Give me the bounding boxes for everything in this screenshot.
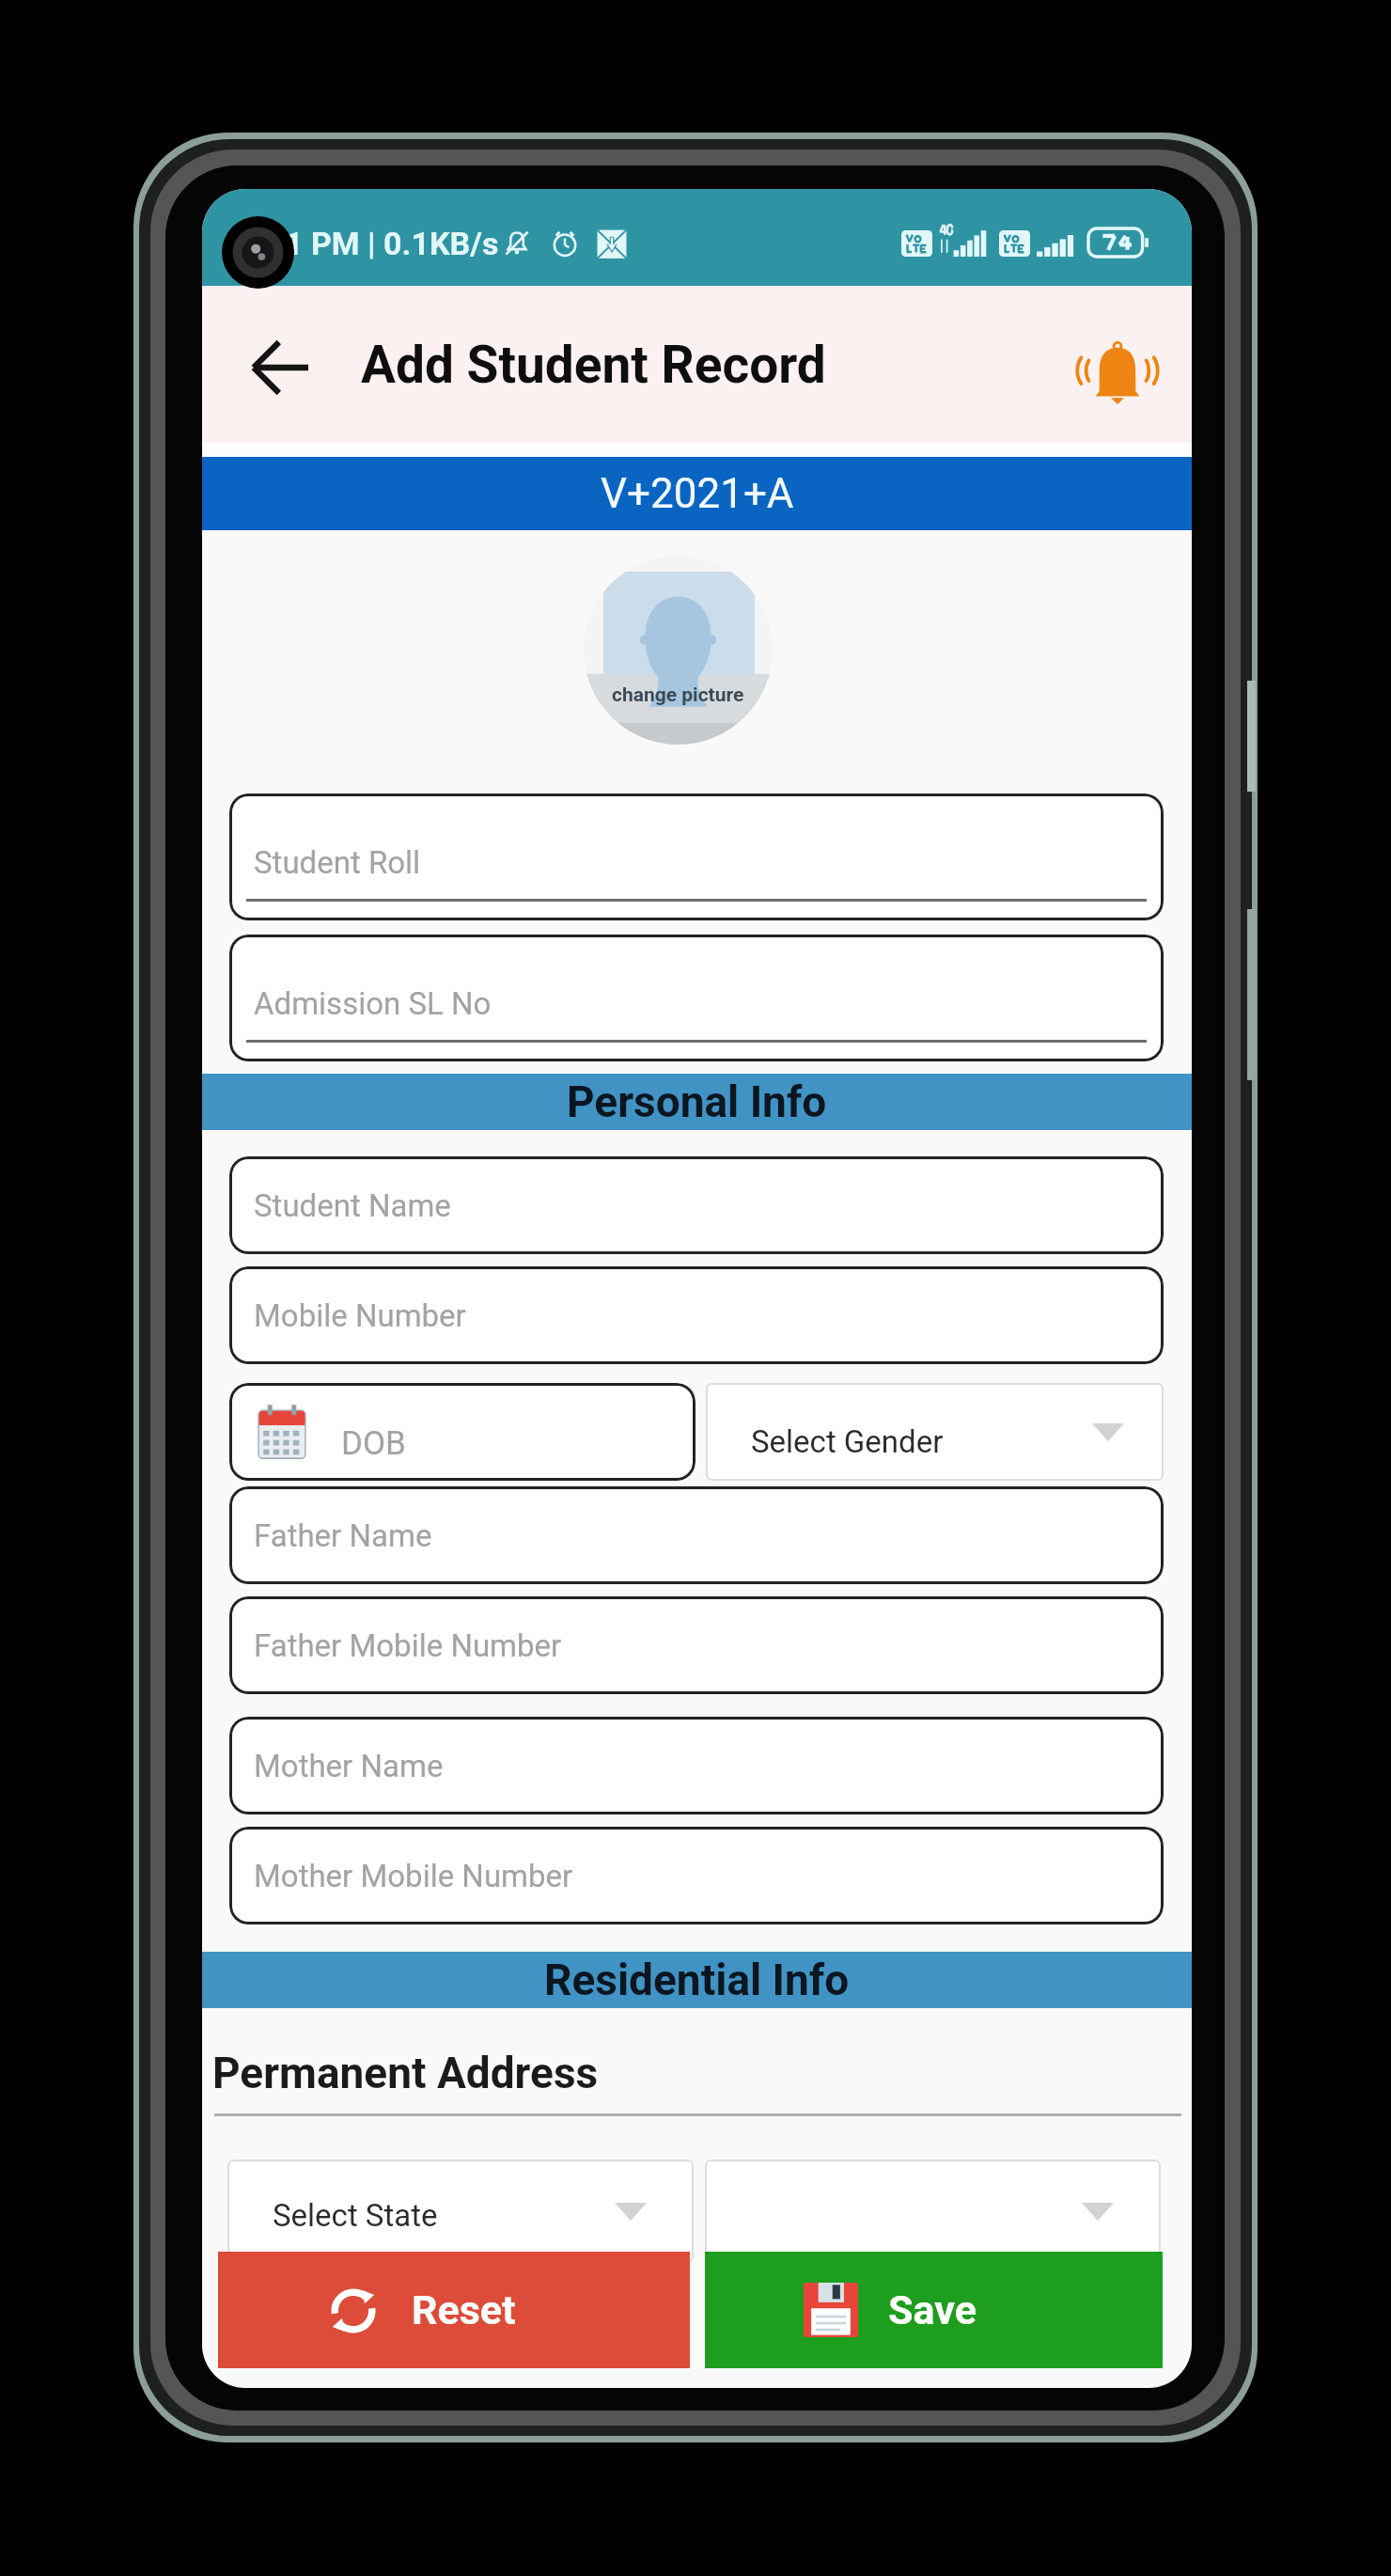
- button[interactable]: Notifications: [1066, 313, 1169, 416]
- button[interactable]: Admission SL No: [229, 935, 1164, 1061]
- staticText: DOB: [341, 1424, 406, 1463]
- staticText: Select State: [273, 2197, 438, 2234]
- staticText: Reset: [412, 2286, 516, 2333]
- button[interactable]: Back: [227, 318, 320, 412]
- staticText: Admission SL No: [254, 985, 492, 1022]
- staticText: Add Student Record: [361, 335, 826, 395]
- button[interactable]: Mother Mobile Number: [229, 1827, 1164, 1924]
- button[interactable]: Student Name: [229, 1156, 1164, 1254]
- staticText: Personal Info: [567, 1076, 827, 1127]
- button[interactable]: Change picture: [584, 556, 773, 745]
- staticText: Father Mobile Number: [254, 1627, 562, 1664]
- button[interactable]: Save: [705, 2252, 1163, 2368]
- staticText: change picture: [612, 683, 744, 707]
- button[interactable]: Select State: [227, 2160, 694, 2263]
- staticText: Select Gender: [751, 1423, 944, 1460]
- button[interactable]: Select Gender: [706, 1383, 1164, 1481]
- button[interactable]: [705, 2160, 1161, 2263]
- button[interactable]: Student Roll: [229, 793, 1164, 920]
- staticText: Save: [888, 2286, 977, 2333]
- staticText: Mother Mobile Number: [254, 1858, 573, 1894]
- staticText: Father Name: [254, 1517, 432, 1554]
- staticText: Student Roll: [254, 844, 421, 881]
- button[interactable]: Father Name: [229, 1486, 1164, 1584]
- button[interactable]: Mobile Number: [229, 1266, 1164, 1364]
- staticText: Permanent Address: [212, 2048, 599, 2098]
- staticText: Residential Info: [544, 1955, 850, 2005]
- staticText: Student Name: [254, 1187, 451, 1224]
- staticText: Mobile Number: [254, 1297, 466, 1334]
- staticText: 1 PM | 0.1KB/s: [285, 225, 499, 262]
- button[interactable]: DOB: [229, 1383, 695, 1481]
- button[interactable]: Mother Name: [229, 1717, 1164, 1814]
- staticText: Mother Name: [254, 1748, 444, 1784]
- button[interactable]: Father Mobile Number: [229, 1596, 1164, 1694]
- button[interactable]: Reset: [218, 2252, 690, 2368]
- staticText: V+2021+A: [601, 469, 794, 518]
